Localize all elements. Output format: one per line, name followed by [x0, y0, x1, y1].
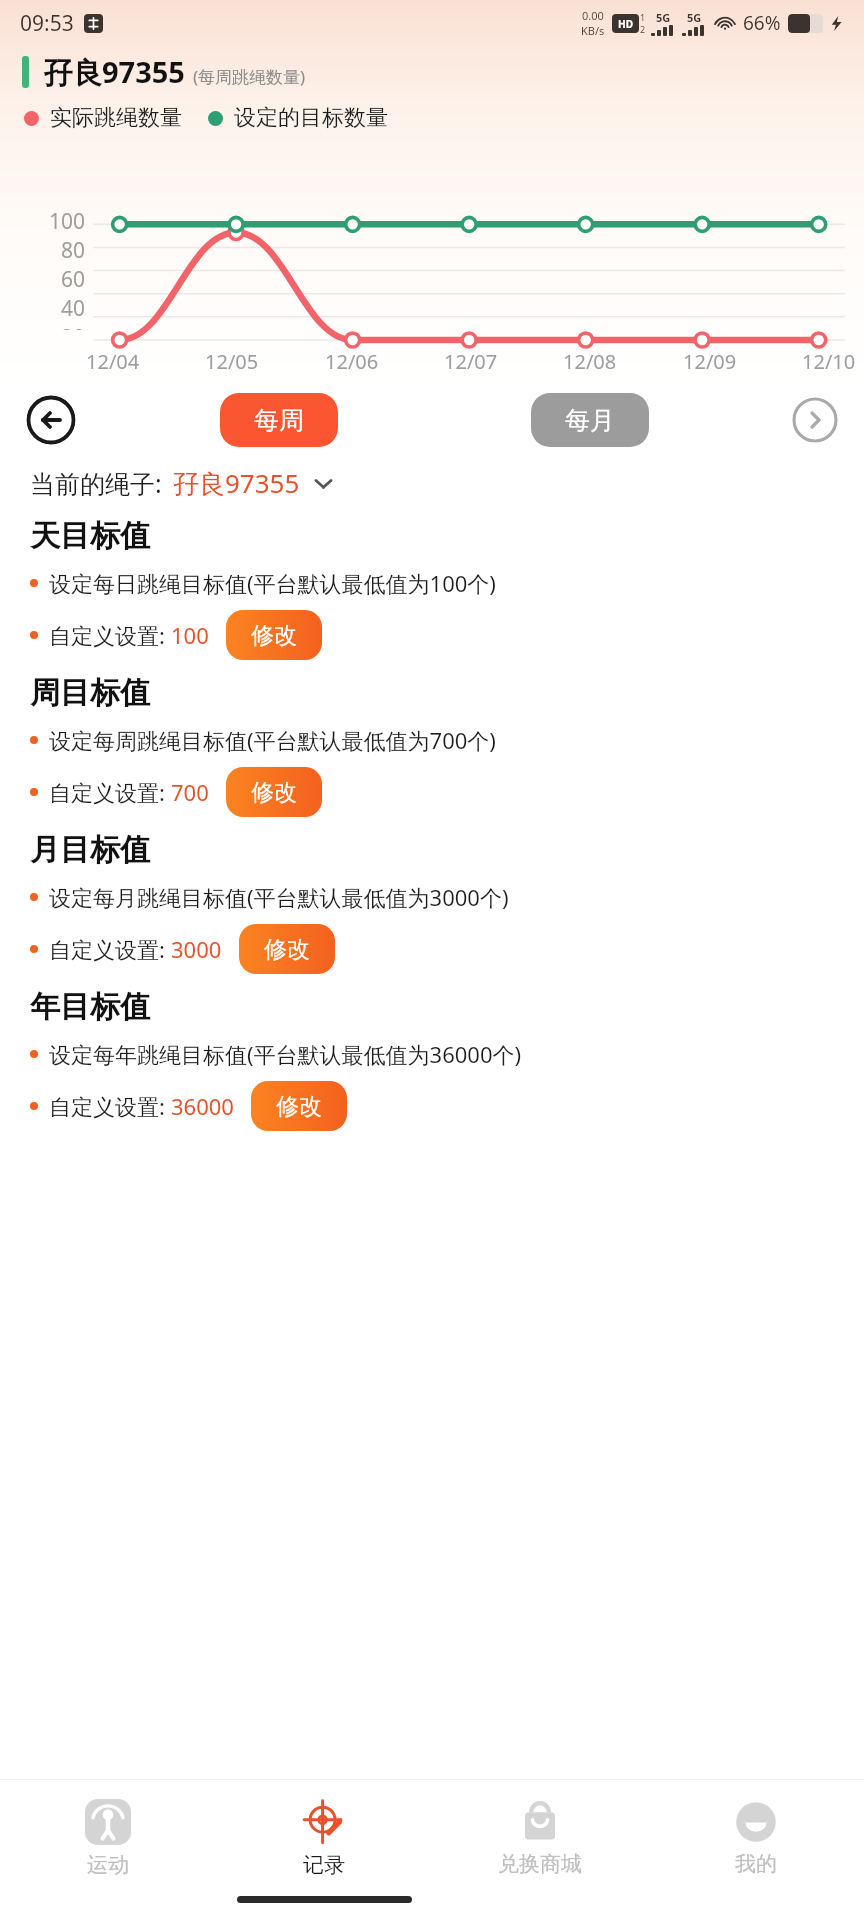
- staticText: 修改: [251, 621, 297, 650]
- staticText: 自定义设置:: [49, 620, 171, 650]
- staticText: 兑换商城: [498, 1851, 582, 1877]
- staticText: 3000: [171, 934, 222, 964]
- staticText: (每周跳绳数量): [193, 65, 306, 88]
- staticText: 自定义设置:: [49, 1091, 171, 1121]
- button[interactable]: 每月: [531, 393, 649, 447]
- button[interactable]: 修改: [226, 610, 322, 660]
- staticText: 09:53: [20, 9, 74, 38]
- staticText: 2: [640, 23, 646, 35]
- button[interactable]: 我的: [648, 1780, 864, 1896]
- button[interactable]: 运动: [0, 1780, 216, 1896]
- staticText: 66%: [743, 10, 781, 36]
- staticText: 实际跳绳数量: [50, 104, 182, 132]
- staticText: 12/04: [86, 348, 140, 375]
- staticText: 设定每日跳绳目标值(平台默认最低值为100个): [49, 568, 496, 598]
- button[interactable]: 修改: [239, 924, 335, 974]
- staticText: 0.00: [582, 8, 604, 23]
- staticText: 700: [171, 777, 209, 807]
- staticText: 设定的目标数量: [234, 104, 388, 132]
- button[interactable]: Next period: [792, 397, 838, 443]
- button[interactable]: 当前的绳子:: [30, 465, 834, 501]
- staticText: 每月: [565, 405, 615, 436]
- staticText: 12/10: [802, 348, 856, 375]
- staticText: 100: [171, 620, 209, 650]
- staticText: 周目标值: [30, 674, 150, 712]
- staticText: 36000: [171, 1091, 234, 1121]
- staticText: 12/09: [683, 348, 737, 375]
- staticText: 12/05: [205, 348, 259, 375]
- staticText: 孖良97355: [44, 52, 185, 92]
- staticText: 记录: [303, 1852, 345, 1878]
- staticText: 12/08: [563, 348, 617, 375]
- staticText: 修改: [264, 935, 310, 964]
- staticText: 设定每月跳绳目标值(平台默认最低值为3000个): [49, 882, 509, 912]
- staticText: 修改: [251, 778, 297, 807]
- staticText: 60: [61, 265, 86, 294]
- staticText: 12/07: [444, 348, 498, 375]
- button[interactable]: 修改: [251, 1081, 347, 1131]
- button[interactable]: 记录: [216, 1780, 432, 1896]
- staticText: 5G: [687, 10, 702, 25]
- staticText: 年目标值: [30, 988, 150, 1026]
- staticText: 100: [49, 207, 86, 236]
- staticText: 运动: [87, 1852, 129, 1878]
- staticText: 20: [61, 323, 86, 330]
- staticText: HD: [618, 17, 633, 31]
- button[interactable]: 修改: [226, 767, 322, 817]
- button[interactable]: 每周: [220, 393, 338, 447]
- staticText: 自定义设置:: [49, 934, 171, 964]
- staticText: 每周: [254, 405, 304, 436]
- staticText: 自定义设置:: [49, 777, 171, 807]
- button[interactable]: Previous period: [26, 395, 76, 445]
- staticText: 孖良97355: [173, 465, 300, 501]
- staticText: 设定每周跳绳目标值(平台默认最低值为700个): [49, 725, 496, 755]
- staticText: 1: [640, 11, 646, 23]
- staticText: 当前的绳子:: [30, 466, 162, 500]
- button[interactable]: 兑换商城: [432, 1780, 648, 1896]
- staticText: 5G: [656, 10, 671, 25]
- staticText: KB/s: [581, 23, 605, 38]
- staticText: 12/06: [325, 348, 379, 375]
- staticText: 80: [61, 236, 86, 265]
- staticText: 设定每年跳绳目标值(平台默认最低值为36000个): [49, 1039, 522, 1069]
- staticText: 天目标值: [30, 517, 150, 555]
- staticText: 我的: [735, 1851, 777, 1877]
- staticText: 40: [61, 294, 86, 323]
- staticText: 月目标值: [30, 831, 150, 869]
- staticText: 修改: [276, 1092, 322, 1121]
